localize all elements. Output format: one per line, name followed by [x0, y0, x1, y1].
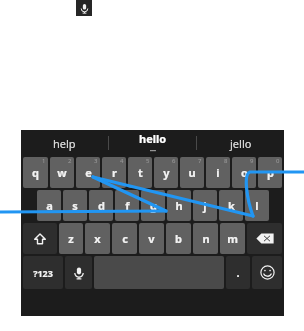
staticText: help: [53, 136, 76, 151]
staticText: ?123: [33, 267, 53, 279]
staticText: d: [98, 198, 105, 213]
staticText: e: [85, 165, 92, 180]
button[interactable]: z: [59, 223, 83, 254]
button[interactable]: a: [37, 190, 61, 221]
staticText: b: [175, 231, 182, 246]
staticText: a: [46, 198, 53, 213]
button[interactable]: j: [193, 190, 217, 221]
button[interactable]: ?123: [23, 256, 63, 289]
staticText: hello: [139, 131, 167, 146]
button[interactable]: h: [167, 190, 191, 221]
button[interactable]: n: [193, 223, 218, 254]
button[interactable]: hello: [109, 130, 196, 156]
staticText: g: [150, 198, 157, 213]
button[interactable]: g: [141, 190, 165, 221]
staticText: f: [125, 198, 130, 213]
staticText: v: [148, 231, 155, 246]
button[interactable]: e: [76, 157, 100, 188]
staticText: 3: [94, 157, 98, 165]
button[interactable]: p: [258, 157, 282, 188]
button[interactable]: Shift: [23, 223, 57, 254]
button[interactable]: r: [102, 157, 126, 188]
button[interactable]: u: [180, 157, 204, 188]
staticText: r: [112, 165, 117, 180]
staticText: 0: [276, 157, 280, 165]
button[interactable]: x: [85, 223, 110, 254]
staticText: 5: [146, 157, 150, 165]
staticText: z: [68, 231, 74, 246]
button[interactable]: d: [89, 190, 113, 221]
staticText: 9: [250, 157, 254, 165]
button[interactable]: s: [63, 190, 87, 221]
staticText: .: [236, 265, 240, 280]
staticText: ···: [150, 146, 156, 156]
button[interactable]: k: [219, 190, 243, 221]
staticText: m: [227, 231, 238, 246]
button[interactable]: .: [226, 256, 250, 289]
button[interactable]: w: [50, 157, 74, 188]
staticText: y: [163, 165, 170, 180]
button[interactable]: c: [112, 223, 137, 254]
button[interactable]: m: [220, 223, 245, 254]
staticText: o: [241, 165, 248, 180]
button[interactable]: help: [21, 130, 108, 156]
staticText: w: [57, 165, 67, 180]
button[interactable]: Emoji: [252, 256, 282, 289]
button[interactable]: Voice input: [76, 0, 92, 16]
staticText: i: [216, 165, 220, 180]
staticText: x: [94, 231, 101, 246]
staticText: s: [72, 198, 78, 213]
staticText: t: [138, 165, 143, 180]
button[interactable]: i: [206, 157, 230, 188]
button[interactable]: b: [166, 223, 191, 254]
button[interactable]: Voice input: [65, 256, 92, 289]
button[interactable]: l: [245, 190, 269, 221]
button[interactable]: Backspace: [247, 223, 282, 254]
button[interactable]: q: [23, 157, 48, 188]
staticText: jello: [230, 136, 252, 151]
staticText: p: [267, 165, 274, 180]
staticText: 4: [120, 157, 124, 165]
button[interactable]: o: [232, 157, 256, 188]
staticText: q: [32, 165, 39, 180]
button[interactable]: f: [115, 190, 139, 221]
button[interactable]: y: [154, 157, 178, 188]
staticText: l: [255, 198, 259, 213]
staticText: 8: [224, 157, 228, 165]
staticText: 2: [68, 157, 72, 165]
staticText: 7: [198, 157, 202, 165]
staticText: n: [202, 231, 210, 246]
staticText: 6: [172, 157, 176, 165]
staticText: 1: [42, 157, 46, 165]
staticText: k: [228, 198, 235, 213]
button[interactable]: t: [128, 157, 152, 188]
button[interactable]: v: [139, 223, 164, 254]
staticText: h: [175, 198, 183, 213]
staticText: u: [188, 165, 196, 180]
staticText: c: [122, 231, 128, 246]
button[interactable]: jello: [197, 130, 284, 156]
staticText: j: [203, 198, 207, 213]
